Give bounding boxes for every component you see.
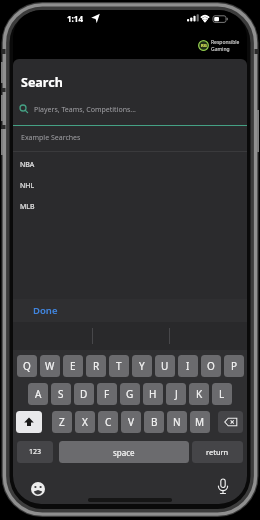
staticText: M [195,415,205,429]
staticText: W [45,359,55,373]
button[interactable] [218,411,243,433]
staticText: A [35,387,42,401]
staticText: X [82,415,88,429]
staticText: H [149,387,157,401]
button[interactable]: RG [198,40,209,51]
button[interactable]: K [189,383,209,405]
button[interactable]: E [63,355,83,377]
button[interactable]: U [155,355,175,377]
staticText: C [105,415,112,429]
button[interactable]: T [109,355,129,377]
button[interactable]: Y [132,355,152,377]
button[interactable]: N [167,411,187,433]
button[interactable]: MLB [13,193,247,214]
staticText: P [231,359,238,373]
button[interactable]: 123 [17,441,53,463]
staticText: F [104,387,110,401]
staticText: T [116,359,122,373]
staticText: I [186,359,190,373]
staticText: return [206,447,229,457]
staticText: Example Searches [21,133,81,143]
button[interactable]: L [212,383,232,405]
staticText: NHL [20,181,35,191]
button[interactable] [16,411,42,433]
staticText: MLB [20,202,35,212]
staticText: N [173,415,181,429]
button[interactable]: A [28,383,48,405]
button[interactable]: Q [17,355,37,377]
button[interactable] [216,478,230,496]
button[interactable]: G [120,383,140,405]
button[interactable]: F [97,383,117,405]
staticText: V [128,415,134,429]
staticText: Done [33,304,58,317]
button[interactable]: W [40,355,60,377]
button[interactable]: space [59,441,189,463]
button[interactable]: H [143,383,163,405]
staticText: Players, Teams, Competitions... [34,105,136,115]
button[interactable]: B [144,411,164,433]
button[interactable]: return [192,441,243,463]
staticText: 123 [29,447,42,457]
button[interactable]: NBA [13,151,247,172]
button[interactable]: X [75,411,95,433]
staticText: K [196,387,203,401]
staticText: RG [201,43,207,49]
button[interactable]: D [74,383,94,405]
staticText: J [175,387,178,401]
button[interactable] [13,98,247,126]
staticText: S [58,387,64,401]
staticText: Responsible [211,39,240,46]
button[interactable]: S [51,383,71,405]
staticText: B [151,415,158,429]
staticText: Search [21,74,63,91]
staticText: Q [23,359,31,373]
staticText: G [126,387,134,401]
button[interactable] [30,481,46,497]
button[interactable]: V [121,411,141,433]
staticText: space [113,447,135,458]
button[interactable]: NHL [13,172,247,193]
button[interactable]: O [201,355,221,377]
staticText: Y [139,359,145,373]
button[interactable]: C [98,411,118,433]
button[interactable]: Z [52,411,72,433]
staticText: E [70,359,76,373]
button[interactable]: Done [13,299,247,322]
button[interactable]: M [190,411,210,433]
staticText: Gaming [211,46,230,53]
staticText: U [161,359,169,373]
staticText: R [93,359,100,373]
button[interactable]: I [178,355,198,377]
button[interactable]: R [86,355,106,377]
staticText: 1:14 [67,13,83,24]
staticText: Z [59,415,65,429]
staticText: O [207,359,215,373]
button[interactable]: J [166,383,186,405]
staticText: NBA [20,160,35,170]
button[interactable]: P [224,355,244,377]
staticText: D [80,387,88,401]
staticText: L [219,387,225,401]
